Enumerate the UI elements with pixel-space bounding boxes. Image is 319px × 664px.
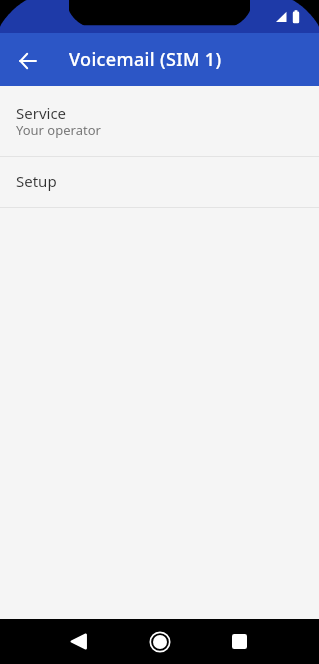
button[interactable]: Navigate up	[0, 33, 54, 86]
button[interactable]: Home	[136, 619, 183, 664]
button[interactable]: Recent apps	[216, 619, 263, 664]
button[interactable]: Back	[55, 619, 102, 664]
staticText: Service	[16, 103, 67, 123]
button[interactable]: Setup	[0, 157, 319, 207]
staticText: Your operator	[16, 121, 101, 139]
button[interactable]: Service	[0, 86, 319, 156]
staticText: Setup	[16, 171, 57, 191]
staticText: Voicemail (SIM 1)	[69, 47, 222, 72]
